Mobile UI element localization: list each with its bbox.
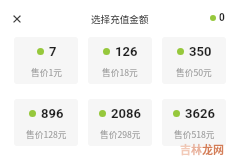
staticText: 350 xyxy=(189,44,212,59)
staticText: 2086 xyxy=(111,106,141,121)
staticText: 售价298元 xyxy=(100,128,141,141)
staticText: 售价50元 xyxy=(176,66,212,79)
staticText: 896 xyxy=(41,106,64,121)
staticText: 售价18元 xyxy=(102,66,138,79)
button[interactable]: 2086 xyxy=(88,99,152,146)
staticText: 7 xyxy=(49,44,57,59)
button[interactable]: 350 xyxy=(162,37,226,84)
button[interactable]: 896 xyxy=(14,99,78,146)
staticText: 选择充值金额 xyxy=(91,12,149,26)
staticText: 龙网 xyxy=(202,141,224,157)
button[interactable]: Close xyxy=(7,9,26,28)
staticText: 林 xyxy=(191,141,202,157)
staticText: 126 xyxy=(115,44,138,59)
staticText: 售价518元 xyxy=(174,128,215,141)
button[interactable]: 3626 xyxy=(162,99,226,146)
button[interactable]: 0 xyxy=(210,12,225,24)
staticText: 售价1元 xyxy=(31,66,62,79)
button[interactable]: 7 xyxy=(14,37,78,84)
staticText: 0 xyxy=(219,12,225,24)
staticText: 3626 xyxy=(185,106,215,121)
staticText: 吉 xyxy=(180,141,191,157)
staticText: 售价128元 xyxy=(26,128,67,141)
button[interactable]: 126 xyxy=(88,37,152,84)
